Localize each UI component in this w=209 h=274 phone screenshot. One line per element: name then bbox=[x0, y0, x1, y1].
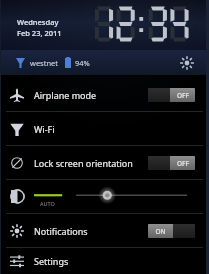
button[interactable]: Brightness slider bbox=[0, 180, 209, 213]
staticText: Wednesday bbox=[17, 17, 59, 27]
staticText: Airplane mode bbox=[34, 89, 148, 101]
button[interactable]: OFF bbox=[148, 156, 195, 170]
staticText: OFF bbox=[177, 159, 189, 168]
staticText: ON bbox=[155, 227, 166, 236]
button[interactable]: ON bbox=[148, 224, 195, 238]
staticText: Lock screen orientation bbox=[34, 157, 148, 169]
staticText: 94% bbox=[75, 58, 90, 68]
button[interactable]: Brightness bbox=[177, 53, 197, 73]
staticText: AUTO bbox=[40, 200, 55, 207]
staticText: Wi-Fi bbox=[34, 123, 55, 135]
staticText: OFF bbox=[177, 91, 189, 100]
button[interactable]: Airplane mode bbox=[0, 78, 209, 111]
button[interactable]: Notifications bbox=[0, 214, 209, 247]
staticText: Settings bbox=[34, 255, 69, 267]
button[interactable]: Lock screen orientation bbox=[0, 146, 209, 179]
staticText: Feb 23, 2011 bbox=[17, 28, 62, 38]
button[interactable]: Settings bbox=[0, 248, 209, 274]
staticText: westnet bbox=[30, 58, 58, 68]
button[interactable]: OFF bbox=[148, 88, 195, 102]
button[interactable]: Wi-Fi bbox=[0, 112, 209, 145]
staticText: Notifications bbox=[34, 225, 148, 237]
